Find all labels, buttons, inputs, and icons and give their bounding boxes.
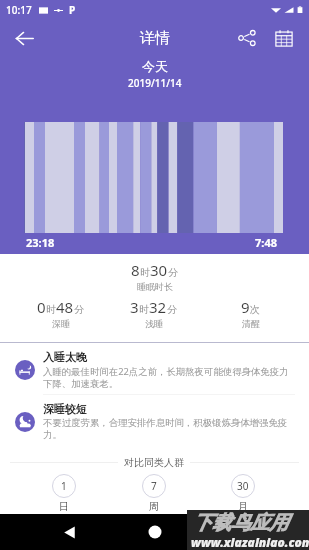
staticText: 不要过度劳累，合理安排作息时间，积极锻炼身体增强免疫力。 — [43, 417, 294, 441]
staticText: 今天 — [142, 58, 168, 74]
staticText: 3 — [130, 297, 139, 317]
staticText: 时 — [46, 303, 56, 316]
staticText: 8 — [131, 260, 140, 280]
staticText: 7 — [151, 479, 157, 493]
staticText: 32 — [149, 297, 167, 317]
staticText: 30 — [150, 260, 168, 280]
staticText: 分 — [168, 266, 178, 279]
staticText: 日 — [59, 500, 69, 513]
staticText: 分 — [167, 303, 177, 316]
staticText: 48 — [56, 297, 74, 317]
button[interactable]: 入睡太晚 — [0, 348, 309, 398]
staticText: 9 — [241, 297, 250, 317]
staticText: 详情 — [140, 29, 170, 48]
staticText: 下载鸟应用 — [193, 511, 288, 535]
button[interactable]: Home — [138, 514, 172, 550]
staticText: 清醒 — [242, 318, 260, 329]
staticText: 0 — [37, 297, 46, 317]
staticText: P — [69, 3, 76, 17]
staticText: 深睡较短 — [43, 402, 87, 416]
staticText: 入睡的最佳时间在22点之前，长期熬夜可能使得身体免疫力下降、加速衰老。 — [43, 365, 294, 390]
staticText: www.xlazalniao.com — [191, 534, 309, 550]
button[interactable]: 1 — [49, 471, 79, 516]
staticText: 次 — [250, 303, 260, 316]
button[interactable]: 30 — [228, 471, 258, 516]
staticText: 2019/11/14 — [128, 76, 182, 90]
staticText: 1 — [61, 479, 67, 493]
staticText: 对比同类人群 — [124, 456, 184, 469]
staticText: 月 — [238, 500, 248, 513]
staticText: 10:17 — [6, 3, 32, 17]
staticText: 浅睡 — [145, 318, 163, 329]
staticText: 分 — [74, 303, 84, 316]
button[interactable]: Back — [52, 514, 86, 550]
button[interactable]: Calendar — [266, 20, 302, 56]
button[interactable]: Back — [6, 20, 42, 56]
button[interactable]: 7 — [139, 471, 169, 516]
staticText: 时 — [140, 266, 150, 279]
button[interactable]: Share — [229, 20, 265, 56]
staticText: 30 — [237, 479, 249, 493]
button[interactable]: 深睡较短 — [0, 400, 309, 450]
staticText: 睡眠时长 — [137, 281, 173, 292]
staticText: 23:18 — [26, 235, 55, 250]
staticText: 周 — [149, 500, 159, 513]
staticText: 深睡 — [52, 318, 70, 329]
staticText: 入睡太晚 — [43, 350, 87, 364]
staticText: 7:48 — [255, 235, 277, 250]
staticText: 时 — [139, 303, 149, 316]
